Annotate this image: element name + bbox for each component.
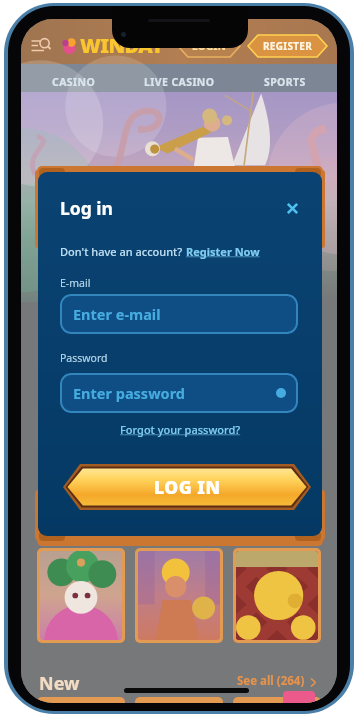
button[interactable]: CASINO <box>21 68 127 96</box>
staticText: See all (264) <box>237 673 305 689</box>
button[interactable] <box>37 697 125 703</box>
button[interactable]: LOGIN <box>178 35 240 57</box>
staticText: New <box>39 671 80 696</box>
staticText: Don't have an account? <box>60 244 186 259</box>
button[interactable]: Register Now <box>186 244 260 259</box>
button[interactable]: Close <box>280 196 304 220</box>
staticText: E-mail <box>60 276 91 290</box>
staticText: Enter e-mail <box>73 304 161 324</box>
staticText: WINDAY <box>80 32 164 59</box>
staticText: LOGIN <box>192 39 227 53</box>
button[interactable]: Menu and search <box>29 34 53 58</box>
staticText: SPORTS <box>264 75 306 89</box>
staticText: LIVE CASINO <box>144 75 215 89</box>
button[interactable]: Forgot your password? <box>120 422 241 437</box>
button[interactable]: LOG IN <box>63 464 311 510</box>
button[interactable]: REGISTER <box>248 35 327 57</box>
staticText: Enter password <box>73 383 185 403</box>
button[interactable] <box>135 697 223 703</box>
staticText: Log in <box>60 196 113 220</box>
staticText: Password <box>60 351 108 365</box>
button[interactable]: See all (264) <box>237 673 318 689</box>
staticText: REGISTER <box>263 39 313 53</box>
staticText: CASINO <box>52 75 96 89</box>
button[interactable] <box>233 548 321 643</box>
staticText: LOG IN <box>154 475 221 499</box>
button[interactable] <box>135 548 223 643</box>
button[interactable] <box>37 548 125 643</box>
button[interactable]: Enter password <box>60 373 298 413</box>
button[interactable]: Enter e-mail <box>60 294 298 334</box>
button[interactable]: SPORTS <box>232 68 337 96</box>
button[interactable]: LIVE CASINO <box>127 68 232 96</box>
button[interactable] <box>233 697 321 703</box>
